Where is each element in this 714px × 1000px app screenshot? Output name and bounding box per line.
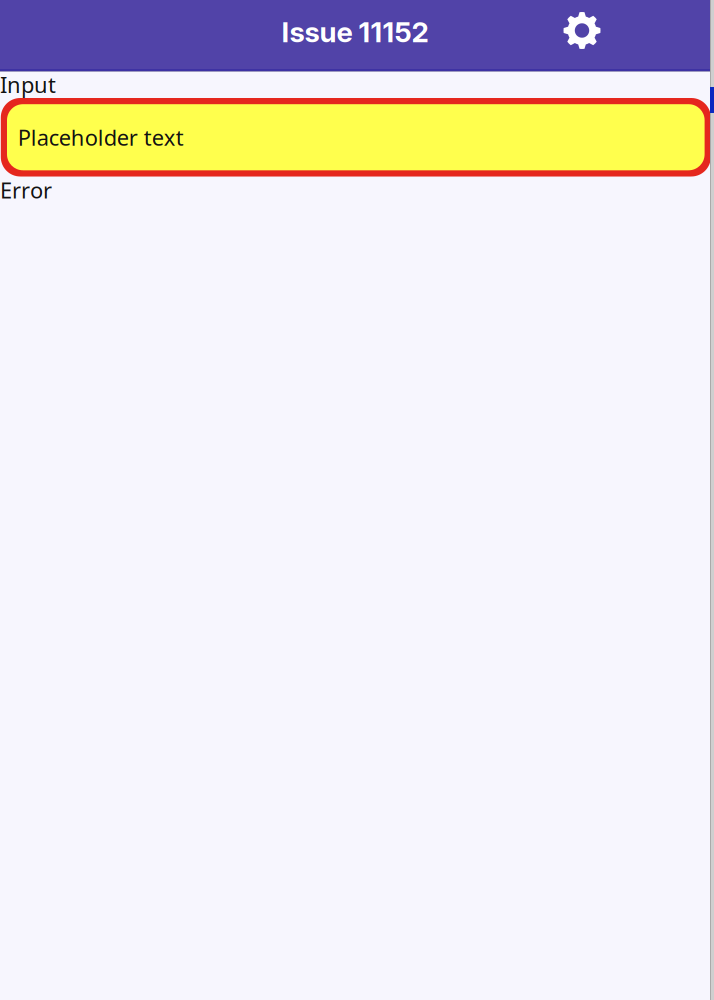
staticText: Input <box>0 70 56 99</box>
staticText: Issue 11152 <box>281 15 428 49</box>
staticText: Placeholder text <box>18 122 184 152</box>
staticText: Error <box>0 175 52 205</box>
button[interactable]: Settings <box>549 0 615 72</box>
button[interactable]: Placeholder text <box>1 98 711 176</box>
